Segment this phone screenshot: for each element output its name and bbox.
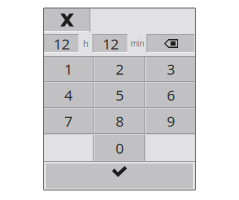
button[interactable]: 5 [95,83,144,107]
staticText: 4 [64,85,72,105]
staticText: 2 [115,59,123,79]
staticText: 0 [115,138,123,158]
staticText: 8 [115,111,123,131]
button[interactable]: 7 [43,109,93,133]
staticText: 12 [53,34,69,53]
staticText: 12 [102,34,118,53]
button[interactable]: 1 [43,57,93,81]
staticText: 5 [115,85,123,105]
staticText: 6 [167,85,175,105]
button[interactable]: 4 [43,83,93,107]
button[interactable]: Close [43,8,90,32]
button[interactable]: 3 [146,57,195,81]
button[interactable]: 12 [92,34,128,53]
button[interactable]: 0 [95,135,144,161]
staticText: h [83,37,89,50]
staticText: 9 [167,111,175,131]
button[interactable]: 9 [146,109,195,133]
staticText: 7 [64,111,72,131]
staticText: 3 [167,59,175,79]
staticText: min [130,38,144,49]
button[interactable]: 8 [95,109,144,133]
button[interactable]: Delete [146,34,195,53]
button[interactable]: 2 [95,57,144,81]
button[interactable]: Confirm [43,162,195,190]
button[interactable]: 12 [43,34,79,53]
button[interactable]: 6 [146,83,195,107]
staticText: 1 [64,59,72,79]
